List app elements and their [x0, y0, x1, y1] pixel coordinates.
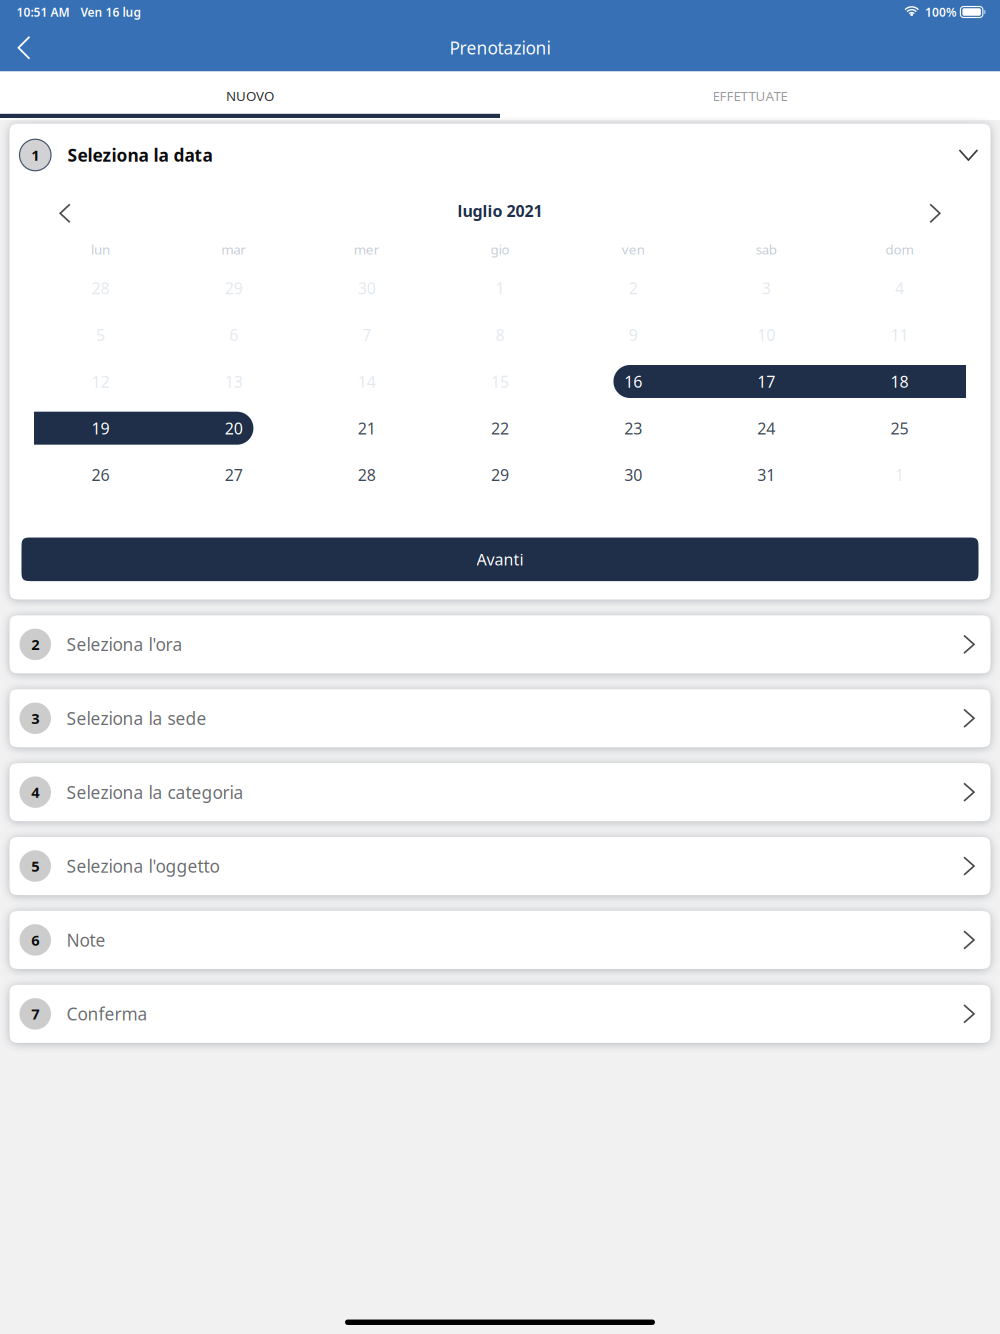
- staticText: 10:51 AM: [16, 4, 69, 20]
- staticText: 8: [495, 324, 504, 345]
- staticText: 15: [491, 371, 509, 392]
- staticText: 100%: [925, 4, 957, 20]
- staticText: 13: [225, 371, 243, 392]
- staticText: 4: [31, 782, 39, 802]
- staticText: 29: [225, 277, 243, 299]
- button[interactable]: EFFETTUATE: [500, 73, 1000, 118]
- button[interactable]: 7: [9, 985, 990, 1043]
- button[interactable]: Avanti: [21, 537, 978, 581]
- staticText: luglio 2021: [457, 200, 542, 221]
- staticText: Seleziona l'ora: [66, 633, 182, 656]
- staticText: 14: [358, 371, 376, 392]
- staticText: 22: [491, 418, 509, 439]
- staticText: 10: [757, 324, 775, 345]
- button[interactable]: 3: [9, 689, 990, 747]
- staticText: sab: [756, 240, 777, 258]
- staticText: 9: [629, 324, 638, 345]
- staticText: Prenotazioni: [449, 36, 550, 59]
- staticText: Seleziona la sede: [66, 707, 206, 730]
- staticText: gio: [490, 240, 509, 258]
- staticText: 6: [229, 324, 238, 345]
- staticText: 28: [92, 277, 110, 299]
- staticText: 1: [31, 145, 39, 165]
- staticText: Seleziona la categoria: [66, 781, 243, 804]
- staticText: 6: [31, 930, 39, 950]
- staticText: 17: [757, 371, 775, 392]
- staticText: NUOVO: [226, 87, 274, 105]
- staticText: 25: [890, 418, 908, 439]
- staticText: 5: [96, 324, 105, 345]
- staticText: 20: [225, 418, 243, 439]
- button[interactable]: 2: [9, 615, 990, 673]
- button[interactable]: Previous month: [43, 193, 87, 233]
- button[interactable]: 6: [9, 911, 990, 969]
- staticText: mar: [221, 240, 246, 258]
- staticText: 21: [358, 418, 376, 439]
- button[interactable]: NUOVO: [0, 73, 500, 118]
- staticText: 4: [895, 277, 904, 299]
- staticText: 1: [895, 464, 904, 485]
- staticText: Seleziona l'oggetto: [66, 854, 219, 877]
- staticText: dom: [885, 240, 913, 258]
- staticText: Conferma: [66, 1002, 147, 1025]
- staticText: 19: [92, 418, 110, 439]
- button[interactable]: Back: [0, 24, 48, 71]
- staticText: 23: [624, 418, 642, 439]
- staticText: EFFETTUATE: [712, 87, 787, 105]
- button[interactable]: Next month: [913, 193, 957, 233]
- staticText: 2: [31, 635, 39, 654]
- staticText: 3: [762, 277, 771, 299]
- staticText: 5: [31, 856, 39, 876]
- staticText: Avanti: [476, 549, 523, 570]
- staticText: 2: [629, 277, 638, 299]
- staticText: Seleziona la data: [67, 143, 212, 166]
- staticText: 24: [757, 418, 775, 439]
- button[interactable]: Collapse: [946, 133, 990, 177]
- staticText: 28: [358, 464, 376, 485]
- staticText: 30: [624, 464, 642, 485]
- staticText: 7: [362, 324, 371, 345]
- button[interactable]: 4: [9, 763, 990, 821]
- staticText: lun: [91, 240, 110, 258]
- staticText: 31: [757, 464, 775, 485]
- staticText: 29: [491, 464, 509, 485]
- staticText: mer: [354, 240, 380, 258]
- staticText: 26: [92, 464, 110, 485]
- staticText: 27: [225, 464, 243, 485]
- staticText: 12: [92, 371, 110, 392]
- staticText: ven: [622, 240, 645, 258]
- staticText: 7: [31, 1004, 39, 1024]
- staticText: 30: [358, 277, 376, 299]
- staticText: 16: [624, 371, 642, 392]
- staticText: Ven 16 lug: [80, 4, 141, 20]
- staticText: 1: [495, 277, 504, 299]
- button[interactable]: 5: [9, 837, 990, 895]
- staticText: 3: [31, 708, 39, 728]
- staticText: Note: [66, 928, 105, 951]
- staticText: 18: [890, 371, 908, 392]
- staticText: 11: [890, 324, 908, 345]
